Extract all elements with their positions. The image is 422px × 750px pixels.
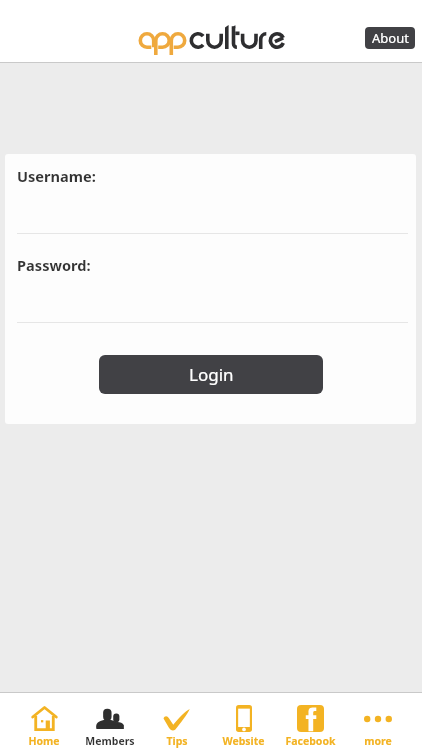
other: Home: [31, 706, 58, 731]
button[interactable]: Members: [77, 695, 143, 748]
staticText: Username:: [17, 166, 96, 186]
staticText: Website: [222, 734, 265, 748]
other: Website: [236, 705, 252, 732]
other: Tips: [163, 708, 190, 730]
other: More: [364, 715, 392, 723]
staticText: more: [364, 734, 392, 748]
button[interactable]: Website: [210, 695, 277, 748]
staticText: Facebook: [285, 734, 336, 748]
staticText: Members: [85, 734, 135, 748]
other: Members: [96, 708, 124, 729]
staticText: Tips: [166, 734, 188, 748]
staticText: About: [372, 29, 409, 47]
staticText: Home: [28, 734, 60, 748]
staticText: Login: [189, 363, 234, 386]
button[interactable]: Login: [99, 355, 323, 394]
button[interactable]: Home: [11, 695, 77, 748]
button[interactable]: Facebook: [277, 695, 344, 748]
button[interactable]: Tips: [143, 695, 210, 748]
other: Facebook: [297, 705, 324, 732]
button[interactable]: About: [365, 27, 415, 49]
staticText: Password:: [17, 255, 91, 275]
button[interactable]: More: [344, 695, 411, 748]
other: appculture: [136, 0, 288, 62]
